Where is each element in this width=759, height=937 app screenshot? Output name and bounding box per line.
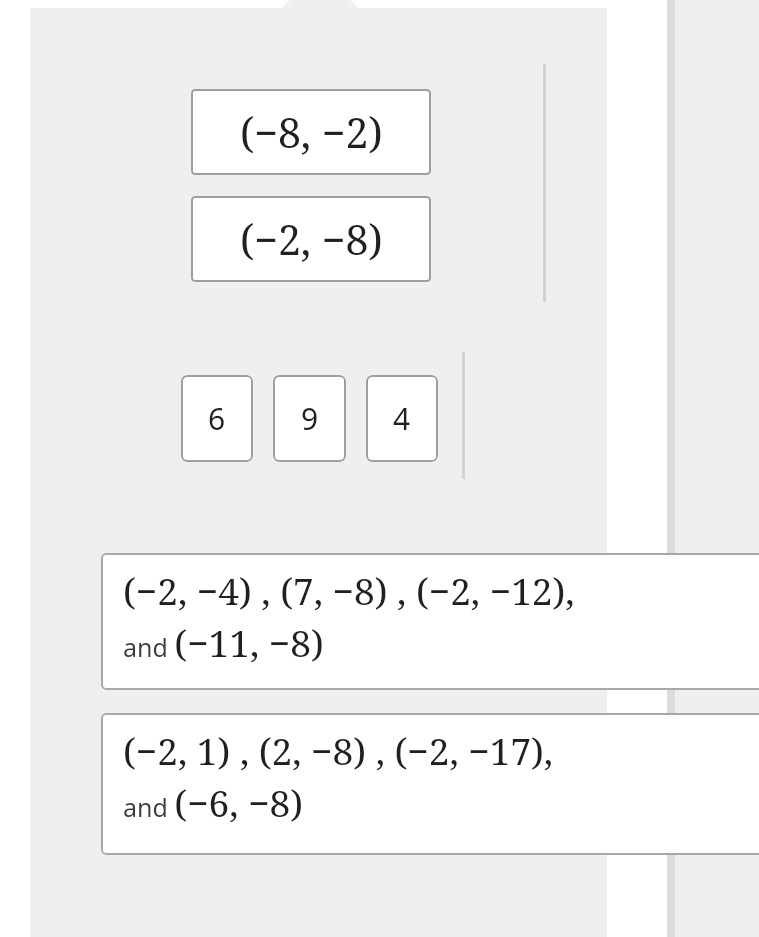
staticText: 6 [208,398,226,439]
button[interactable]: 6 [181,375,253,462]
button[interactable]: (−2, 1) , (2, −8) , (−2, −17), [101,713,759,855]
button[interactable]: 4 [366,375,438,462]
button[interactable]: (−2, −4) , (7, −8) , (−2, −12), [101,553,759,690]
staticText: (−2, 1) , (2, −8) , (−2, −17), [123,725,554,775]
staticText: (−8, −2) [240,104,383,160]
button[interactable]: (−2, −8) [191,196,431,282]
staticText: and (−11, −8) [123,617,324,667]
staticText: 4 [393,398,411,439]
button[interactable]: (−8, −2) [191,89,431,175]
staticText: 9 [301,398,319,439]
staticText: (−2, −8) [240,211,383,267]
staticText: and (−6, −8) [123,777,304,827]
staticText: (−2, −4) , (7, −8) , (−2, −12), [123,565,575,615]
button[interactable]: 9 [273,375,346,462]
